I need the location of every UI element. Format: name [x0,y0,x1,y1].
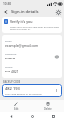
staticText: Email [5,39,12,42]
button[interactable]: Settings [54,8,62,16]
button[interactable]: Verify it's you [2,17,62,33]
staticText: Delete [44,107,52,110]
staticText: Sign-in details [11,9,39,15]
staticText: •••••••• [5,56,16,61]
button[interactable]: Phone [5,63,59,76]
button[interactable]: Back [2,8,10,16]
button[interactable]: Password [5,50,59,63]
staticText: This code expires in 30 seconds [5,92,42,95]
button[interactable]: Delete [32,100,64,112]
staticText: Password [5,52,17,55]
button[interactable]: More options [54,88,59,93]
button[interactable]: Home [22,112,43,121]
staticText: BACKUP CODE [3,80,21,83]
staticText: Edit [14,107,19,110]
staticText: 10:30 [3,2,12,6]
button[interactable]: Email [5,37,59,50]
staticText: Keep your account safe with an extra ste… [10,25,60,31]
staticText: 482 193 [5,86,20,91]
staticText: Phone [5,65,13,68]
staticText: Verify it's you [10,19,33,24]
button[interactable]: Recents [43,112,64,121]
button[interactable]: 482 193 [2,84,62,97]
button[interactable]: Show password [54,54,59,59]
staticText: example@gmail.com [5,43,39,48]
staticText: •••• 4821 [5,69,19,74]
button[interactable]: Edit [0,100,32,112]
button[interactable]: Back [0,112,22,121]
